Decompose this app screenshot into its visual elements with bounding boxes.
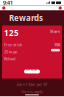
staticText: 125	[4, 27, 19, 38]
staticText: 150	[54, 42, 60, 47]
button[interactable]: Back	[2, 6, 6, 10]
button[interactable]: Order now	[24, 69, 40, 73]
staticText: 25 to go	[4, 49, 17, 54]
staticText: Free drink	[4, 42, 22, 47]
staticText: Order now	[26, 66, 38, 77]
staticText: Rewards	[9, 13, 43, 23]
staticText: Stars	[50, 28, 60, 34]
staticText: Terms apply	[21, 89, 43, 94]
staticText: Earn 1 Star per $1	[16, 82, 47, 87]
staticText: 9:41	[3, 0, 13, 6]
staticText: Reload	[4, 56, 15, 61]
button[interactable]: Account	[58, 6, 62, 10]
